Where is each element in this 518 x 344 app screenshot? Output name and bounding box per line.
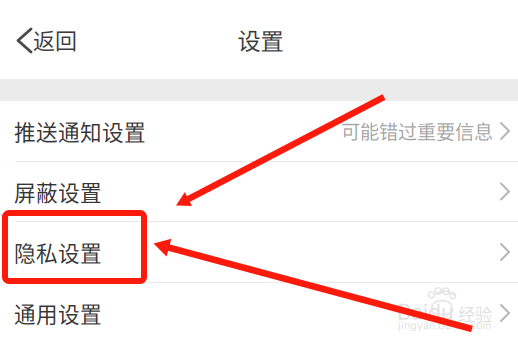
button[interactable]: 推送通知设置 [0, 101, 518, 161]
staticText: 可能错过重要信息 [341, 117, 493, 145]
staticText: 通用设置 [14, 297, 102, 329]
staticText: 设置 [237, 23, 283, 56]
staticText: Baidu [397, 299, 454, 325]
staticText: 经验 [458, 301, 492, 326]
button[interactable]: 通用设置 [0, 283, 518, 343]
button[interactable]: 返回 [0, 0, 87, 79]
staticText: 隐私设置 [14, 236, 102, 268]
staticText: 返回 [33, 24, 77, 55]
staticText: 屏蔽设置 [14, 176, 102, 207]
staticText: jingyan.baidu.com [398, 319, 491, 332]
staticText: 推送通知设置 [14, 115, 146, 147]
button[interactable]: 屏蔽设置 [0, 162, 518, 221]
button[interactable]: 隐私设置 [0, 222, 518, 282]
